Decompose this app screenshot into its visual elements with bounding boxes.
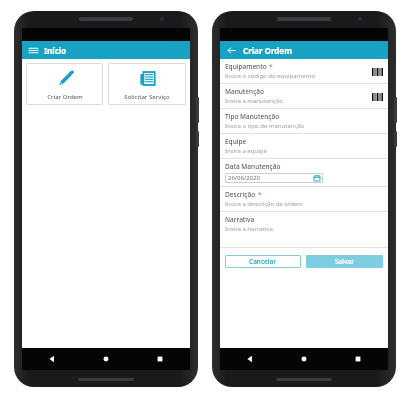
button[interactable]: Tipo Manutenção: [220, 109, 388, 134]
button[interactable]: Back: [242, 351, 258, 367]
button[interactable]: Scan barcode: [371, 92, 383, 101]
button[interactable]: Home: [296, 351, 312, 367]
button[interactable]: Equipamento: [220, 59, 388, 84]
staticText: Data Manutenção: [225, 162, 281, 171]
staticText: Tipo Manutenção: [225, 112, 280, 121]
staticText: 26/06/2020: [228, 174, 260, 182]
staticText: Insira a manutenção: [225, 97, 283, 105]
button[interactable]: Manutenção: [220, 84, 388, 109]
staticText: Solicitar Serviço: [124, 93, 170, 101]
button[interactable]: Recents: [152, 351, 168, 367]
button[interactable]: Back: [44, 351, 60, 367]
button[interactable]: Criar Ordem: [26, 63, 103, 105]
staticText: Salvar: [335, 257, 354, 266]
button[interactable]: Back: [226, 45, 237, 56]
staticText: Manutenção: [225, 87, 265, 96]
staticText: Insira o tipo de manutenção: [225, 122, 305, 130]
button[interactable]: Solicitar Serviço: [108, 63, 186, 105]
staticText: Equipe: [225, 137, 247, 146]
button[interactable]: Cancelar: [225, 255, 301, 268]
staticText: *: [269, 62, 273, 71]
staticText: Insira o código do equipamento: [225, 72, 316, 80]
button[interactable]: Data Manutenção: [220, 159, 388, 187]
button[interactable]: Recents: [350, 351, 366, 367]
staticText: Insira a narrativa: [225, 225, 273, 233]
staticText: Equipamento: [225, 62, 267, 71]
button[interactable]: Equipe: [220, 134, 388, 159]
button[interactable]: Scan barcode: [371, 67, 383, 76]
staticText: Cancelar: [249, 257, 277, 266]
staticText: Criar Ordem: [47, 93, 83, 101]
button[interactable]: Home: [98, 351, 114, 367]
button[interactable]: Salvar: [306, 255, 383, 268]
staticText: Início: [44, 45, 67, 56]
button[interactable]: Descrição: [220, 187, 388, 212]
button[interactable]: Pick date: [314, 175, 320, 181]
staticText: Narrativa: [225, 215, 255, 224]
button[interactable]: Menu: [28, 45, 39, 56]
staticText: Criar Ordem: [243, 45, 292, 56]
staticText: Descrição: [225, 190, 256, 199]
button[interactable]: Narrativa: [220, 212, 388, 248]
staticText: *: [258, 190, 262, 199]
staticText: Insira a equipe: [225, 147, 267, 155]
staticText: Insira a descrição da ordem: [225, 200, 303, 208]
